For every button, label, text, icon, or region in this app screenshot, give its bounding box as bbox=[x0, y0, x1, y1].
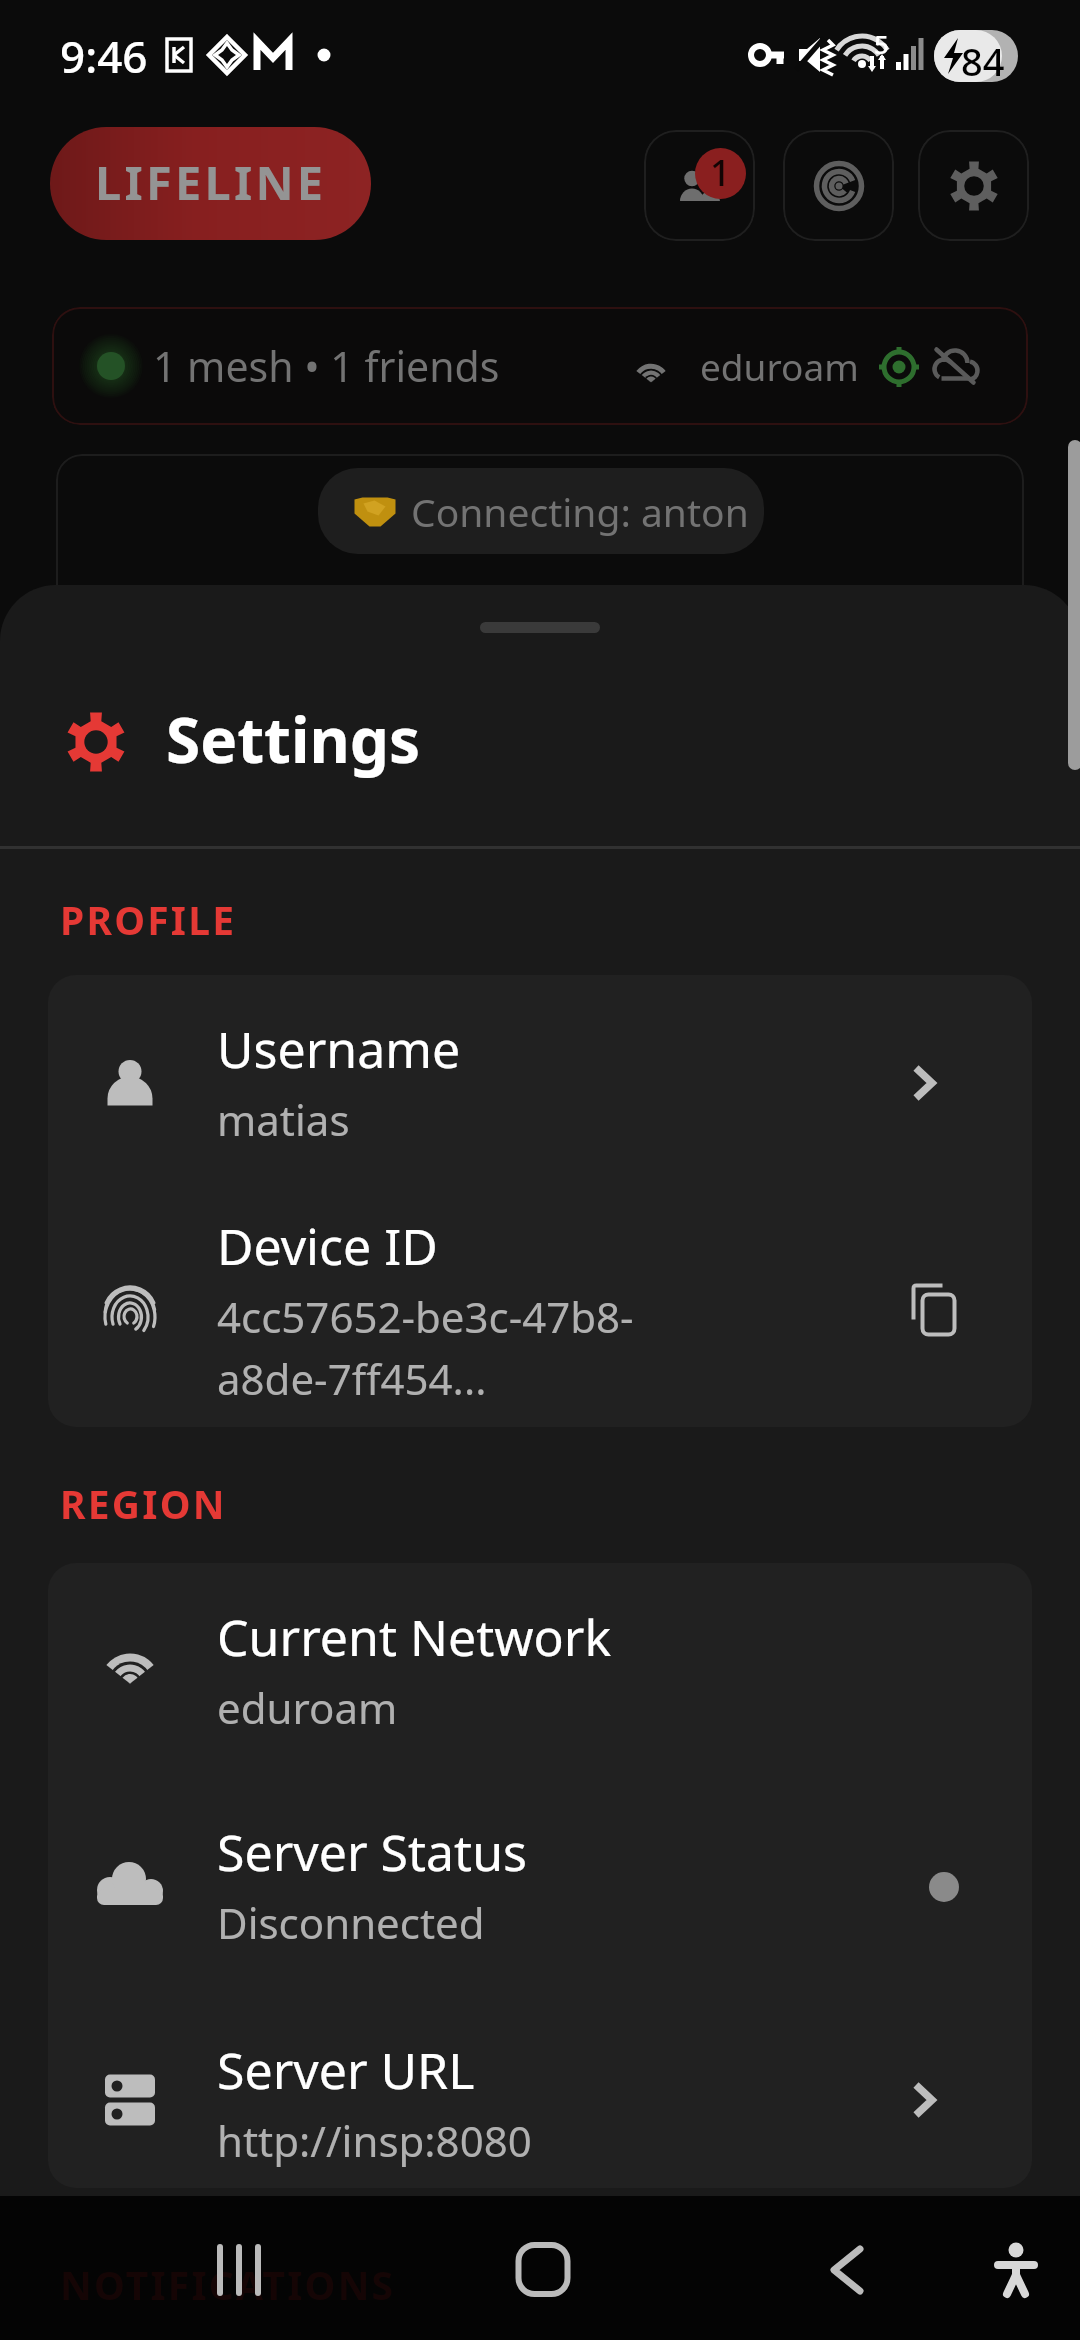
staticText: eduroam bbox=[217, 1679, 398, 1736]
staticText: 9:46 bbox=[60, 26, 148, 86]
staticText: 84 bbox=[961, 35, 1005, 87]
button[interactable]: Current Network bbox=[48, 1563, 1032, 1778]
button[interactable]: Mesh status: 1 mesh, 1 friends, eduroam bbox=[52, 307, 1028, 425]
button[interactable]: LIFELINE bbox=[50, 127, 371, 240]
button[interactable]: Back bbox=[792, 2207, 902, 2317]
button[interactable]: 1 notification bbox=[695, 148, 746, 199]
staticText: Connecting: anton bbox=[411, 485, 749, 538]
button[interactable]: Device ID bbox=[48, 1207, 1032, 1427]
staticText: a8de-7ff454... bbox=[217, 1350, 487, 1407]
staticText: REGION bbox=[60, 1477, 227, 1530]
staticText: Server URL bbox=[217, 2036, 475, 2104]
button[interactable]: Home bbox=[488, 2207, 598, 2317]
staticText: PROFILE bbox=[60, 893, 237, 946]
staticText: eduroam bbox=[700, 341, 859, 391]
button[interactable]: Server Status bbox=[48, 1778, 1032, 1996]
button[interactable]: Drag handle bbox=[432, 597, 648, 657]
staticText: NOTIFICATIONS bbox=[60, 2258, 396, 2311]
staticText: Device ID bbox=[217, 1212, 438, 1280]
staticText: matias bbox=[217, 1091, 350, 1148]
staticText: LIFELINE bbox=[95, 150, 327, 214]
button[interactable]: Accessibility bbox=[961, 2207, 1071, 2317]
staticText: Server Status bbox=[217, 1818, 527, 1886]
button[interactable]: Server URL bbox=[48, 1996, 1032, 2183]
button[interactable]: Recents bbox=[186, 2207, 296, 2317]
staticText: Current Network bbox=[217, 1603, 612, 1671]
button[interactable]: Username bbox=[48, 975, 1032, 1207]
staticText: Disconnected bbox=[217, 1894, 485, 1951]
staticText: http://insp:8080 bbox=[217, 2112, 532, 2169]
button[interactable]: Radar bbox=[783, 130, 894, 241]
staticText: Username bbox=[217, 1015, 461, 1083]
staticText: 5 bbox=[874, 26, 889, 61]
staticText: 1 bbox=[710, 148, 731, 197]
button[interactable]: Settings bbox=[918, 130, 1029, 241]
staticText: 4cc57652-be3c-47b8- bbox=[217, 1288, 634, 1345]
staticText: 1 mesh • 1 friends bbox=[153, 338, 500, 394]
button[interactable]: People bbox=[644, 130, 755, 241]
button[interactable]: Connecting: anton bbox=[318, 468, 764, 554]
staticText: Settings bbox=[166, 697, 421, 781]
